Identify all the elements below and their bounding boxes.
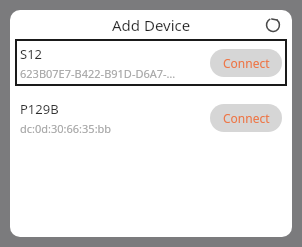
staticText: dc:0d:30:66:35:bb [20, 121, 112, 136]
staticText: P129B [20, 100, 59, 118]
staticText: Connect [223, 55, 270, 71]
staticText: S12 [20, 45, 43, 63]
staticText: Add Device [112, 15, 191, 35]
staticText: 623B07E7-B422-B91D-D6A7-… [20, 66, 176, 81]
button[interactable]: Refresh [260, 12, 286, 38]
button[interactable]: S12 [15, 39, 287, 86]
button[interactable]: Connect [210, 49, 282, 77]
staticText: Connect [223, 110, 270, 126]
button[interactable]: P129B [15, 94, 287, 141]
button[interactable]: Connect [210, 104, 282, 132]
